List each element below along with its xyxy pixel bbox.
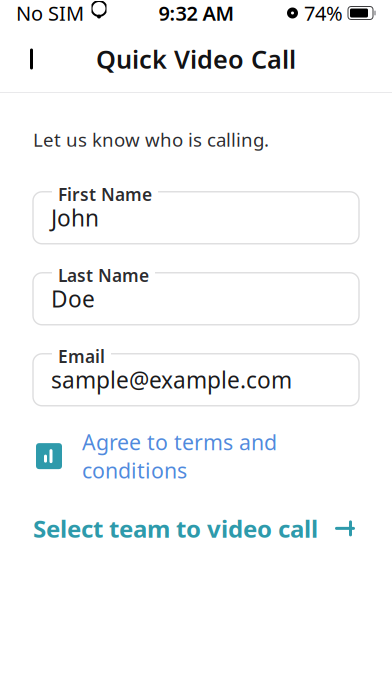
staticText: Quick Video Call: [96, 42, 296, 76]
staticText: 9:32 AM: [158, 0, 234, 26]
staticText: Agree to terms and conditions: [82, 428, 277, 484]
staticText: No SIM: [16, 0, 84, 26]
staticText: Email: [58, 345, 105, 368]
button[interactable]: Select team to video call: [33, 506, 356, 550]
staticText: sample@example.com: [51, 365, 292, 395]
button[interactable]: Back: [10, 37, 58, 81]
staticText: John: [51, 203, 99, 233]
staticText: Last Name: [58, 264, 149, 287]
staticText: Let us know who is calling.: [33, 127, 269, 152]
staticText: 74%: [304, 0, 343, 26]
staticText: First Name: [58, 183, 152, 206]
staticText: Select team to video call: [33, 512, 318, 544]
staticText: Doe: [51, 284, 95, 314]
button[interactable]: Agree to terms and conditions: [36, 428, 277, 484]
